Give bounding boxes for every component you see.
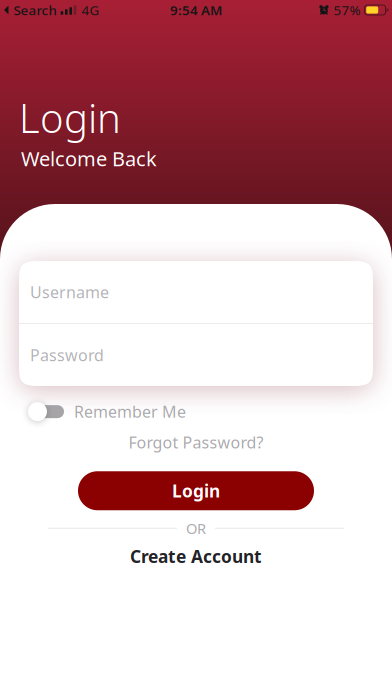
button[interactable]: Username [19,261,373,323]
staticText: Login [172,479,220,502]
staticText: Remember Me [74,401,186,422]
staticText: Forgot Password? [128,432,263,453]
staticText: 4G [81,1,99,19]
staticText: Login [19,91,121,144]
button[interactable]: Forgot Password? [0,432,392,452]
staticText: Username [30,281,109,303]
button[interactable]: Create Account [0,546,392,566]
button[interactable]: Password [19,324,373,386]
staticText: 9:54 AM [170,1,222,19]
staticText: Password [30,344,104,366]
staticText: OR [186,518,206,538]
button[interactable]: Remember Me [28,401,373,422]
staticText: Welcome Back [21,145,157,172]
staticText: 57% [334,1,361,19]
staticText: Create Account [130,545,262,568]
staticText: Search [13,1,56,19]
button[interactable]: Login [78,471,314,510]
